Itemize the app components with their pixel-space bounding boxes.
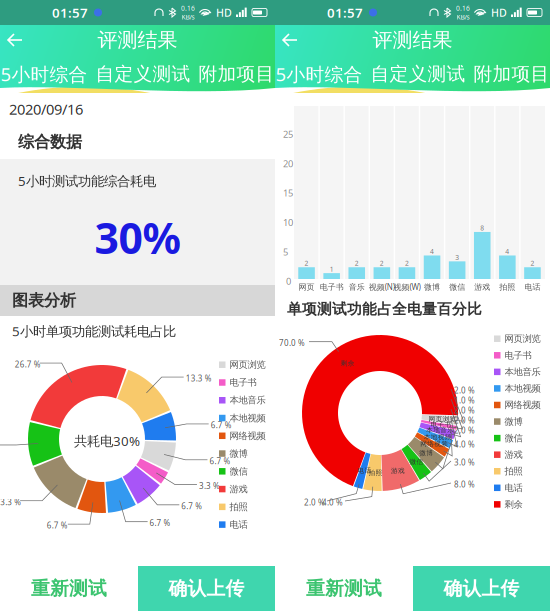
button[interactable]: 重新测试 [0, 566, 138, 611]
staticText: 6.7 % [150, 518, 171, 528]
staticText: 13.3 % [186, 373, 212, 384]
staticText: 2.0 % [304, 497, 325, 508]
staticText: 网络视频 [229, 430, 265, 442]
button[interactable]: 确认上传 [413, 566, 550, 611]
staticText: 拍照 [499, 282, 515, 292]
staticText: 电子书 [504, 350, 531, 361]
staticText: 剩余 [341, 359, 355, 367]
staticText: 26.7 % [15, 359, 41, 370]
staticText: HD [491, 5, 507, 20]
button[interactable]: 重新测试 [275, 566, 413, 611]
button[interactable]: Back [275, 25, 315, 55]
staticText: 网页 [299, 282, 315, 292]
staticText: 图表分析 [12, 291, 76, 310]
staticText: 电子书 [430, 420, 451, 429]
staticText: 微博 [419, 449, 433, 457]
staticText: 微信 [504, 432, 522, 444]
button[interactable]: 自定义测试 [95, 62, 190, 85]
staticText: 0.16 [456, 4, 470, 12]
staticText: 单项测试功能占全电量百分比 [287, 300, 482, 318]
staticText: 3.0 % [454, 457, 475, 468]
staticText: 6.7 % [181, 501, 202, 511]
staticText: 本地音乐 [504, 366, 540, 378]
staticText: 电话 [357, 467, 371, 475]
staticText: 拍照 [229, 501, 247, 513]
staticText: 8 [480, 223, 484, 232]
staticText: 电话 [524, 282, 540, 292]
staticText: 2 [405, 259, 409, 268]
staticText: 视频(N) [369, 282, 395, 292]
button[interactable]: 确认上传 [138, 566, 275, 611]
staticText: 8.0 % [454, 479, 475, 490]
staticText: 4.0 % [322, 497, 343, 508]
staticText: 微博 [229, 448, 247, 459]
staticText: KB/s [181, 12, 194, 21]
staticText: 01:57 [52, 4, 88, 21]
staticText: 5小时综合 [275, 62, 362, 86]
staticText: 3 [455, 253, 459, 262]
staticText: 15 [283, 187, 293, 199]
staticText: 10 [283, 216, 293, 229]
staticText: 5 [283, 246, 288, 258]
staticText: HD [216, 5, 232, 20]
staticText: 25 [283, 128, 293, 140]
staticText: 本地音乐 [426, 426, 454, 434]
staticText: 微博 [424, 282, 440, 292]
staticText: 拍照 [504, 465, 522, 477]
staticText: 剩余 [504, 499, 522, 510]
staticText: 视频(W) [393, 282, 420, 292]
staticText: 共耗电30% [74, 432, 140, 450]
staticText: 5小时单项功能测试耗电占比 [12, 322, 176, 340]
staticText: 附加项目 [473, 62, 549, 85]
staticText: 2.0 % [454, 415, 475, 426]
staticText: 20 [283, 157, 293, 170]
staticText: 1.0 % [454, 395, 475, 406]
staticText: 微信 [409, 458, 423, 466]
button[interactable]: 附加项目 [473, 62, 549, 85]
button[interactable]: Back [0, 25, 40, 55]
staticText: 自定义测试 [95, 62, 190, 85]
staticText: 4.0 % [454, 439, 475, 450]
staticText: 综合数据 [18, 132, 82, 152]
staticText: 网页浏览 [229, 359, 265, 370]
staticText: 1 [330, 265, 334, 274]
staticText: 网页浏览 [428, 415, 456, 423]
staticText: 2 [305, 259, 309, 268]
staticText: 01:57 [327, 4, 363, 21]
staticText: 30% [94, 209, 180, 266]
staticText: 5小时测试功能综合耗电 [18, 172, 156, 190]
staticText: 游戏 [229, 483, 247, 495]
staticText: 电子书 [320, 282, 344, 292]
staticText: 电话 [504, 482, 522, 494]
staticText: 3.3 % [199, 481, 220, 491]
staticText: 本地视频 [229, 412, 265, 424]
staticText: 电子书 [229, 377, 256, 388]
staticText: 6.7 % [211, 420, 232, 430]
staticText: 2 [530, 259, 534, 268]
staticText: 0.16 [181, 4, 195, 12]
staticText: 附加项目 [198, 62, 274, 85]
staticText: 微信 [229, 466, 247, 477]
staticText: 本地视频 [424, 433, 452, 441]
staticText: 本地音乐 [229, 394, 265, 406]
staticText: 2 [355, 259, 359, 268]
button[interactable]: 5小时综合 [0, 62, 87, 86]
staticText: 2.0 % [454, 385, 475, 396]
staticText: 5小时综合 [0, 62, 87, 86]
staticText: 70.0 % [279, 338, 305, 348]
staticText: 拍照 [368, 469, 382, 477]
staticText: 2.0 % [454, 425, 475, 436]
staticText: 网络视频 [504, 399, 540, 411]
staticText: 13.3 % [0, 497, 21, 507]
button[interactable]: 自定义测试 [370, 62, 465, 85]
staticText: 微信 [449, 282, 465, 292]
button[interactable]: 5小时综合 [275, 62, 362, 86]
button[interactable]: 附加项目 [198, 62, 274, 85]
staticText: 评测结果 [372, 28, 452, 52]
staticText: 4 [430, 247, 434, 256]
staticText: 本地视频 [504, 383, 540, 394]
staticText: 游戏 [504, 449, 522, 460]
staticText: 4 [505, 247, 509, 256]
staticText: 2020/09/16 [9, 99, 83, 119]
staticText: 游戏 [391, 467, 405, 475]
